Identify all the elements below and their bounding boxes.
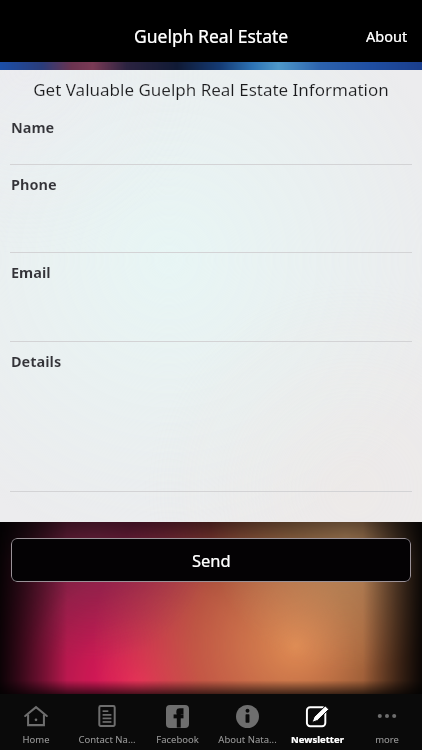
- staticText: Phone: [11, 174, 57, 194]
- staticText: more: [375, 733, 399, 746]
- staticText: Send: [192, 549, 231, 571]
- staticText: Details: [11, 351, 62, 371]
- staticText: Email: [11, 262, 51, 282]
- staticText: Guelph Real Estate: [134, 24, 289, 48]
- button[interactable]: About: [354, 18, 420, 54]
- button[interactable]: Facebook: [142, 694, 212, 750]
- staticText: Name: [11, 117, 55, 137]
- button[interactable]: Phone: [0, 165, 422, 253]
- button[interactable]: Home: [0, 694, 71, 750]
- button[interactable]: Details: [0, 342, 422, 492]
- staticText: Contact Na...: [78, 733, 136, 746]
- staticText: Newsletter: [291, 733, 344, 746]
- button[interactable]: About Nata...: [212, 694, 282, 750]
- button[interactable]: more: [352, 694, 422, 750]
- staticText: Get Valuable Guelph Real Estate Informat…: [33, 78, 389, 101]
- staticText: About: [366, 26, 408, 46]
- staticText: About Nata...: [218, 733, 277, 746]
- button[interactable]: Email: [0, 253, 422, 342]
- staticText: Home: [22, 733, 50, 746]
- button[interactable]: Name: [0, 108, 422, 165]
- staticText: Facebook: [156, 733, 199, 746]
- button[interactable]: Contact Na...: [71, 694, 142, 750]
- button[interactable]: Newsletter: [282, 694, 352, 750]
- button[interactable]: Send: [11, 538, 411, 582]
